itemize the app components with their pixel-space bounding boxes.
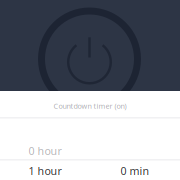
staticText: 1 hour xyxy=(28,163,61,178)
button[interactable]: 1 hour xyxy=(0,158,90,178)
staticText: 0 min xyxy=(120,163,149,178)
staticText: 0 hour xyxy=(28,143,61,158)
button[interactable]: Power xyxy=(0,0,180,91)
button[interactable]: 0 min xyxy=(90,158,180,178)
staticText: Countdown timer (on) xyxy=(53,101,126,111)
button[interactable]: 0 hour xyxy=(0,117,90,158)
